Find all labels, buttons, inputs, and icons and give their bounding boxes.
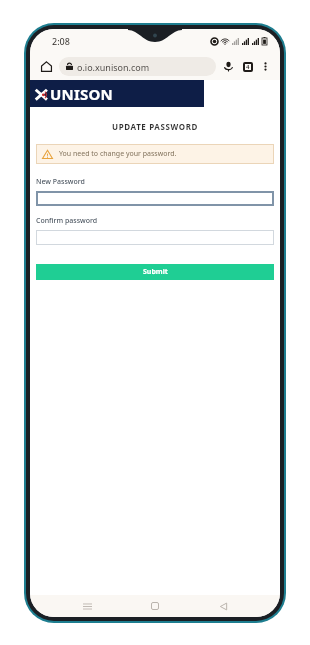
staticText: Confirm password	[36, 216, 98, 226]
button[interactable]: Voice search	[219, 57, 238, 76]
staticText: 2:08	[52, 35, 70, 47]
staticText: Submit	[143, 267, 168, 277]
staticText: 4	[246, 63, 250, 71]
button[interactable]: Home	[144, 595, 166, 617]
button[interactable]: Address bar	[59, 57, 216, 76]
button[interactable]: Tabs	[238, 57, 257, 76]
button[interactable]: Back	[212, 595, 234, 617]
button[interactable]: Submit	[36, 264, 274, 280]
button[interactable]: New Password	[36, 191, 274, 206]
button[interactable]: More options	[257, 58, 274, 75]
staticText: You need to change your password.	[59, 149, 177, 159]
button[interactable]: Home	[36, 56, 56, 76]
button[interactable]: Confirm password	[36, 230, 274, 245]
button[interactable]: Recent apps	[76, 595, 98, 617]
staticText: UNISON	[50, 84, 113, 104]
staticText: o.io.xunison.com	[77, 61, 150, 73]
staticText: UPDATE PASSWORD	[30, 121, 280, 132]
staticText: New Password	[36, 177, 85, 187]
